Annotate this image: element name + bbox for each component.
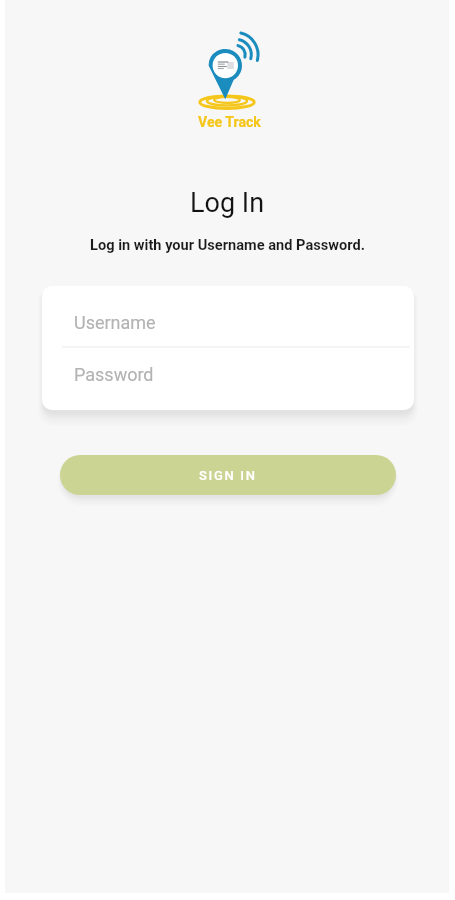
button[interactable]: Password [42, 348, 414, 410]
other: Vee Track logo [183, 48, 279, 138]
button[interactable]: SIGN IN [60, 455, 396, 495]
staticText: SIGN IN [199, 468, 257, 483]
button[interactable]: Username [42, 286, 414, 346]
staticText: Log in with your Username and Password. [90, 236, 365, 253]
staticText: Username [74, 312, 156, 333]
staticText: Password [74, 364, 154, 385]
staticText: Log In [190, 187, 265, 219]
staticText: Vee Track [198, 114, 261, 131]
